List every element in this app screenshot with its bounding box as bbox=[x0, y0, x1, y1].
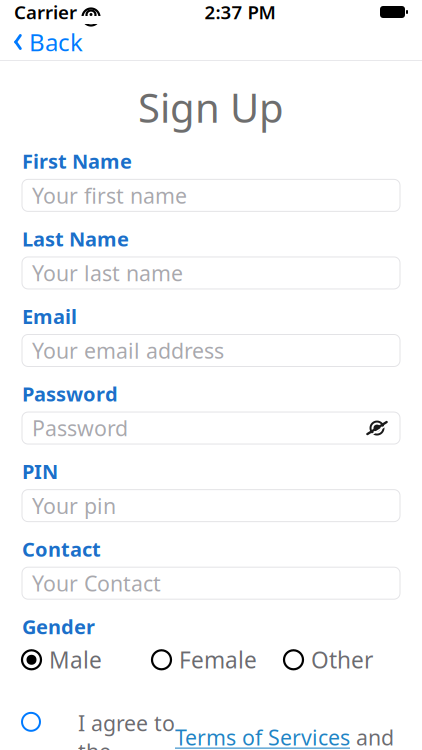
button[interactable]: Agree to terms bbox=[22, 709, 46, 735]
button[interactable]: Your last name bbox=[22, 257, 400, 289]
staticText: Email bbox=[22, 303, 77, 329]
staticText: I agree to the bbox=[78, 709, 175, 750]
button[interactable]: Male bbox=[22, 645, 102, 675]
button[interactable]: Terms of Services bbox=[175, 723, 350, 750]
staticText: Your pin bbox=[32, 491, 116, 520]
staticText: PIN bbox=[22, 458, 58, 485]
button[interactable]: Female bbox=[152, 645, 257, 675]
staticText: Other bbox=[311, 645, 373, 675]
staticText: Gender bbox=[22, 613, 95, 640]
button[interactable]: Back bbox=[0, 20, 83, 64]
button[interactable]: Password bbox=[22, 412, 400, 444]
staticText: Contact bbox=[22, 536, 101, 562]
staticText: Password bbox=[32, 414, 128, 442]
staticText: Password bbox=[22, 380, 118, 407]
staticText: Female bbox=[179, 645, 257, 675]
staticText: Back bbox=[29, 26, 83, 58]
staticText: Sign Up bbox=[138, 81, 284, 134]
staticText: Terms of Services bbox=[175, 723, 350, 750]
button[interactable]: Your Contact bbox=[22, 567, 400, 599]
button[interactable]: Your email address bbox=[22, 334, 400, 366]
staticText: Last Name bbox=[22, 225, 129, 252]
staticText: First Name bbox=[22, 148, 132, 174]
staticText: Your email address bbox=[32, 336, 224, 365]
button[interactable]: Other bbox=[284, 645, 373, 675]
staticText: Your last name bbox=[32, 259, 183, 287]
button[interactable]: Your pin bbox=[22, 490, 400, 522]
staticText: Your first name bbox=[32, 181, 187, 209]
staticText: 2:37 PM bbox=[204, 0, 275, 24]
staticText: Male bbox=[49, 645, 102, 675]
staticText: Your Contact bbox=[32, 569, 161, 597]
staticText: Carrier bbox=[14, 0, 77, 24]
button[interactable]: Your first name bbox=[22, 179, 400, 211]
staticText: and bbox=[350, 723, 394, 750]
